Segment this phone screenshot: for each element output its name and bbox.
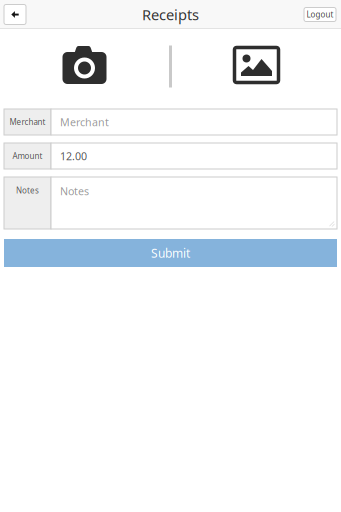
- staticText: Amount: [12, 151, 42, 161]
- staticText: Notes: [16, 185, 39, 196]
- staticText: Merchant: [60, 115, 109, 129]
- staticText: Receipts: [142, 5, 199, 24]
- button[interactable]: Notes: [51, 177, 337, 229]
- staticText: 12.00: [60, 149, 87, 163]
- staticText: Logout: [306, 9, 333, 20]
- button[interactable]: Merchant: [51, 109, 337, 135]
- button[interactable]: Submit: [4, 239, 337, 267]
- staticText: Merchant: [9, 117, 45, 127]
- staticText: Notes: [60, 184, 89, 198]
- button[interactable]: Take photo: [45, 44, 123, 86]
- button[interactable]: Choose from library: [217, 44, 295, 86]
- button[interactable]: Logout: [304, 7, 336, 21]
- button[interactable]: Amount: [51, 143, 337, 169]
- button[interactable]: Back: [4, 4, 26, 24]
- staticText: Submit: [151, 245, 190, 261]
